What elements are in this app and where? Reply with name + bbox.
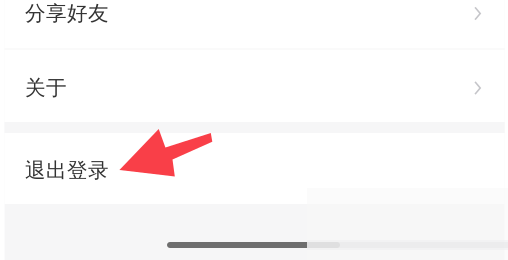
staticText: 退出登录 (25, 158, 109, 183)
button[interactable]: 关于 (5, 50, 505, 122)
staticText: 关于 (25, 75, 67, 101)
button[interactable]: 退出登录 (5, 133, 505, 204)
button[interactable]: 分享好友 (5, 0, 505, 48)
staticText: 分享好友 (25, 1, 109, 26)
